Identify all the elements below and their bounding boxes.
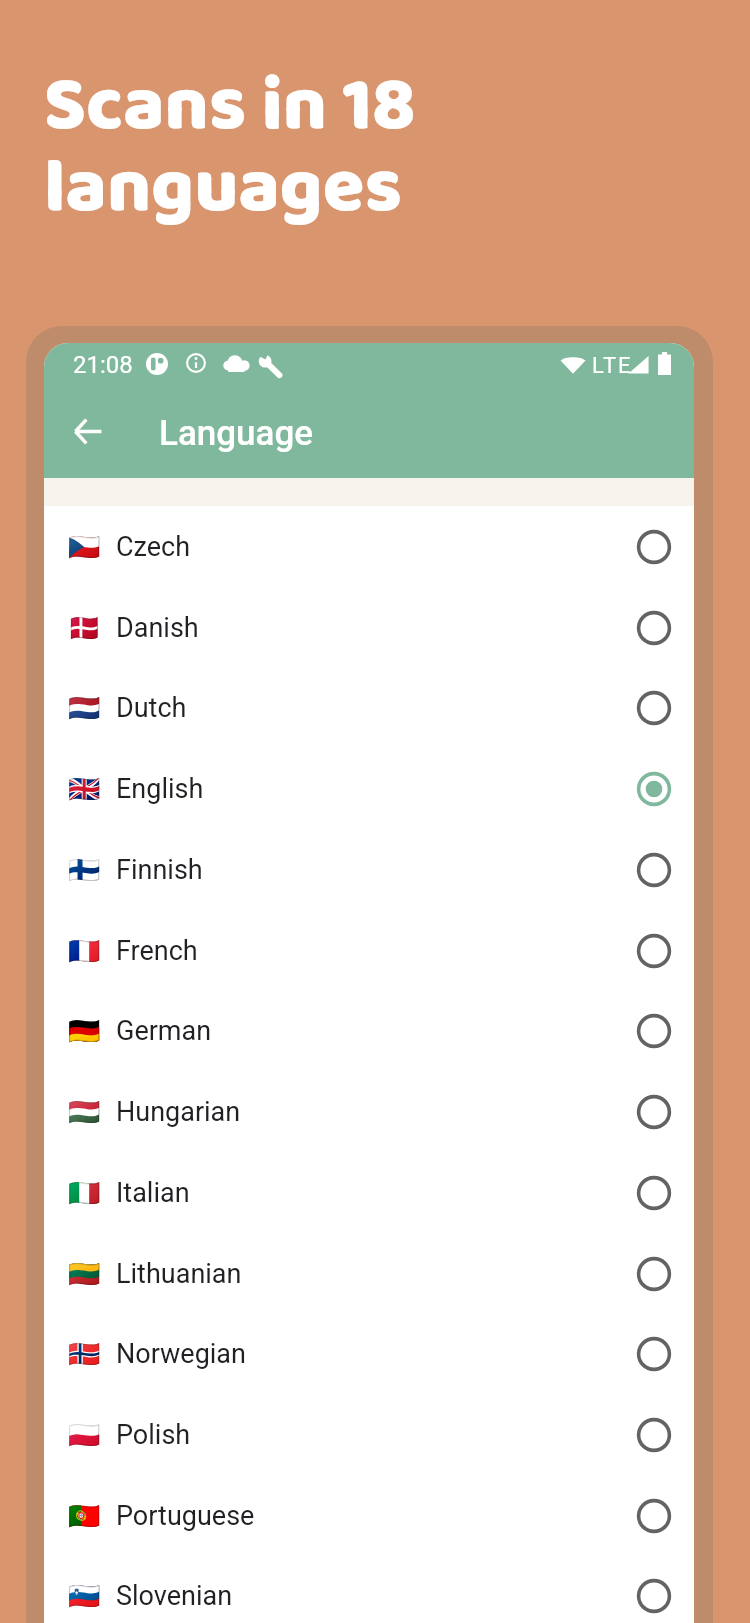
staticText: 🇱🇹 xyxy=(68,1259,101,1289)
button[interactable]: 🇨🇿 xyxy=(44,506,694,587)
staticText: 🇳🇴 xyxy=(68,1339,101,1369)
button[interactable]: 🇳🇱 xyxy=(44,667,694,748)
staticText: Danish xyxy=(116,612,199,644)
button[interactable]: 🇫🇮 xyxy=(44,829,694,910)
staticText: 🇩🇰 xyxy=(68,613,101,643)
staticText: 🇫🇮 xyxy=(68,855,101,885)
staticText: Czech xyxy=(116,531,191,563)
staticText: 🇸🇮 xyxy=(68,1581,101,1611)
button[interactable]: 🇭🇺 xyxy=(44,1071,694,1152)
staticText: 🇮🇹 xyxy=(68,1178,101,1208)
staticText: 🇨🇿 xyxy=(68,532,101,562)
staticText: 🇫🇷 xyxy=(68,936,101,966)
staticText: 🇵🇱 xyxy=(68,1420,101,1450)
staticText: Hungarian xyxy=(116,1096,241,1128)
staticText: Italian xyxy=(116,1177,190,1209)
staticText: German xyxy=(116,1015,212,1047)
button[interactable]: 🇩🇰 xyxy=(44,587,694,668)
staticText: Slovenian xyxy=(116,1580,233,1612)
staticText: 🇭🇺 xyxy=(68,1097,101,1127)
staticText: English xyxy=(116,773,204,805)
button[interactable]: 🇮🇹 xyxy=(44,1152,694,1233)
staticText: French xyxy=(116,935,198,967)
staticText: 21:08 xyxy=(73,351,133,379)
button[interactable]: 🇵🇱 xyxy=(44,1394,694,1475)
button[interactable]: 🇫🇷 xyxy=(44,910,694,991)
button[interactable]: 🇵🇹 xyxy=(44,1475,694,1556)
button[interactable]: 🇬🇧 xyxy=(44,748,694,829)
button[interactable]: 🇩🇪 xyxy=(44,990,694,1071)
staticText: 🇬🇧 xyxy=(68,774,101,804)
staticText: LTE xyxy=(592,353,633,379)
staticText: Lithuanian xyxy=(116,1258,242,1290)
button[interactable]: 🇸🇮 xyxy=(44,1555,694,1623)
staticText: 🇳🇱 xyxy=(68,693,101,723)
staticText: Norwegian xyxy=(116,1338,246,1370)
button[interactable]: 🇳🇴 xyxy=(44,1313,694,1394)
staticText: 🇩🇪 xyxy=(68,1016,101,1046)
staticText: Portuguese xyxy=(116,1500,255,1532)
staticText: Language xyxy=(159,413,314,454)
staticText: 🇵🇹 xyxy=(68,1501,101,1531)
button[interactable]: Back xyxy=(60,403,116,459)
button[interactable]: 🇱🇹 xyxy=(44,1233,694,1314)
staticText: Dutch xyxy=(116,692,187,724)
staticText: Polish xyxy=(116,1419,191,1451)
staticText: languages xyxy=(44,128,402,250)
staticText: Scans in 18 xyxy=(44,46,415,168)
staticText: Finnish xyxy=(116,854,203,886)
